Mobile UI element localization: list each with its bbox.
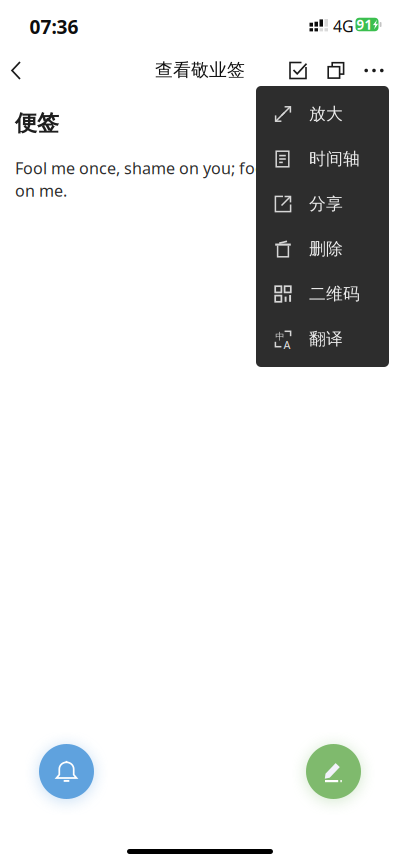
staticText: 91 — [356, 16, 372, 33]
staticText: 删除 — [309, 238, 343, 260]
button[interactable]: 时间轴 — [256, 136, 389, 181]
button[interactable]: 放大 — [256, 91, 389, 136]
staticText: 二维码 — [309, 283, 360, 305]
staticText: A — [283, 338, 290, 352]
button[interactable]: More options — [355, 47, 393, 93]
button[interactable]: Edit note — [296, 734, 371, 809]
staticText: 07:36 — [29, 13, 78, 39]
button[interactable]: Reminder — [29, 734, 104, 809]
staticText: 分享 — [309, 193, 343, 215]
button[interactable]: Back — [0, 47, 44, 93]
staticText: 时间轴 — [309, 148, 360, 170]
button[interactable]: 二维码 — [256, 271, 389, 316]
staticText: Fool me once, shame on you; fool on me. — [15, 157, 269, 201]
button[interactable]: 分享 — [256, 181, 389, 226]
staticText: 中 — [275, 331, 284, 342]
staticText: 便签 — [15, 109, 59, 137]
button[interactable]: 中 — [256, 316, 389, 361]
button[interactable]: Copy — [317, 47, 355, 93]
staticText: 4G — [333, 15, 354, 37]
staticText: 查看敬业签 — [155, 59, 245, 81]
staticText: 放大 — [309, 103, 343, 125]
button[interactable]: Select — [279, 47, 317, 93]
staticText: 翻译 — [309, 328, 343, 350]
button[interactable]: 删除 — [256, 226, 389, 271]
